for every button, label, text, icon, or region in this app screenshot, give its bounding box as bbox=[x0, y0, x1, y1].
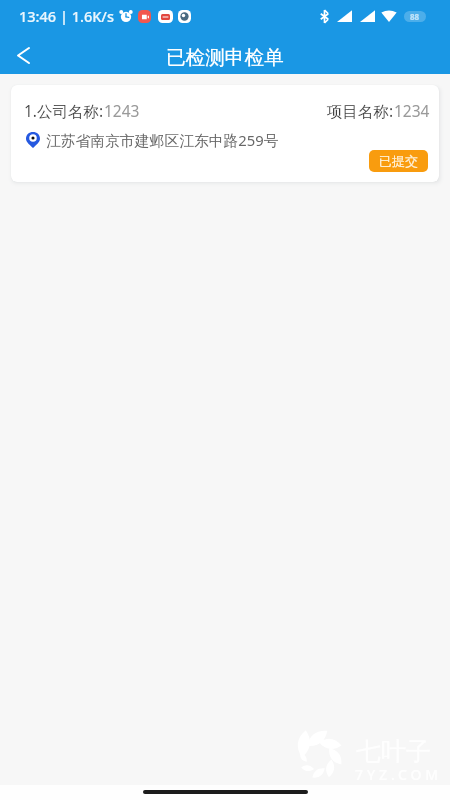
staticText: 13:46 | 1.6K/s bbox=[19, 6, 114, 26]
staticText: 1234 bbox=[394, 100, 430, 121]
staticText: 1243 bbox=[104, 100, 140, 121]
button[interactable]: 已提交 bbox=[369, 150, 428, 172]
staticText: 1.公司名称: bbox=[24, 100, 104, 121]
button[interactable]: 1.公司名称: bbox=[11, 85, 439, 182]
staticText: 已检测申检单 bbox=[166, 45, 284, 70]
staticText: 江苏省南京市建邺区江东中路259号 bbox=[46, 130, 279, 150]
button[interactable]: Back bbox=[0, 37, 47, 74]
staticText: 88 bbox=[410, 11, 420, 22]
staticText: 已提交 bbox=[379, 153, 418, 169]
staticText: 项目名称: bbox=[327, 100, 394, 121]
